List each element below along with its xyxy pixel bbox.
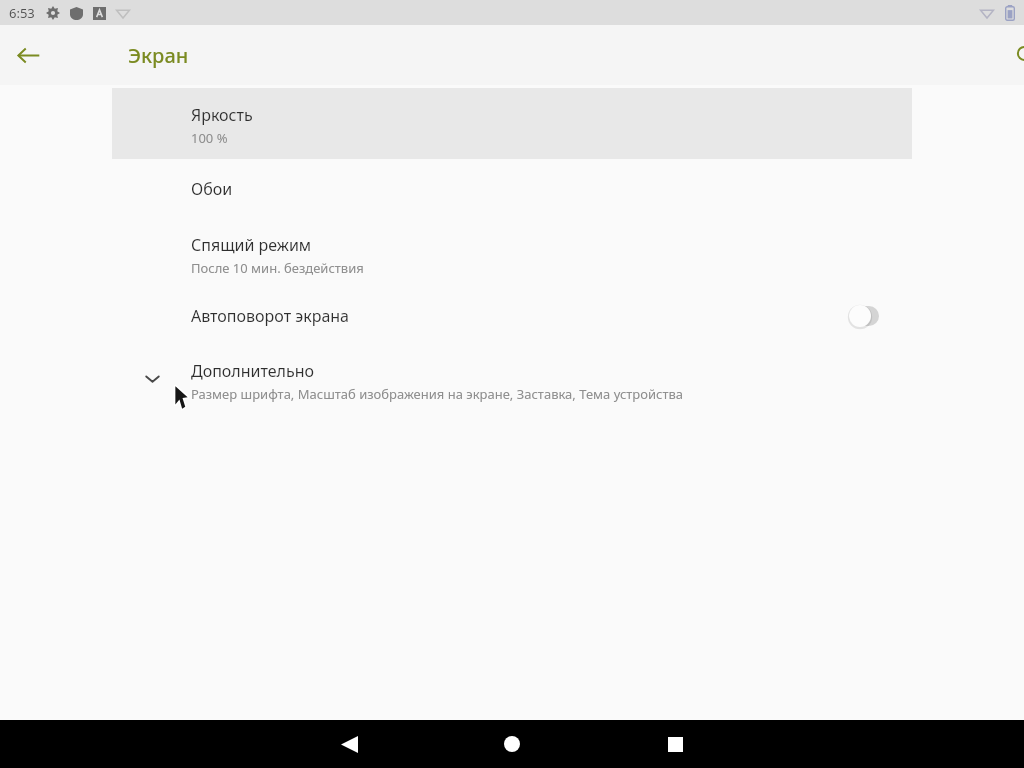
staticText: Обои <box>191 178 233 200</box>
button[interactable]: Назад <box>6 33 50 77</box>
staticText: После 10 мин. бездействия <box>191 259 364 277</box>
button[interactable]: Обои <box>112 165 912 213</box>
button[interactable]: Автоповорот экрана <box>112 292 912 340</box>
staticText: Автоповорот экрана <box>191 305 350 327</box>
button[interactable]: Развернуть <box>112 348 912 408</box>
button[interactable]: Назад <box>325 720 373 768</box>
other: Развернуть <box>138 364 166 392</box>
staticText: Яркость <box>191 104 253 126</box>
button[interactable]: Спящий режим <box>112 220 912 286</box>
staticText: 6:53 <box>9 4 35 22</box>
staticText: Дополнительно <box>191 360 315 382</box>
staticText: 100 % <box>191 129 228 147</box>
button[interactable]: Поиск <box>1004 33 1024 77</box>
button[interactable]: Главный экран <box>488 720 536 768</box>
button[interactable]: Обзор <box>651 720 699 768</box>
staticText: Спящий режим <box>191 234 312 256</box>
staticText: Экран <box>128 42 189 69</box>
button[interactable]: Яркость <box>112 88 912 159</box>
staticText: Размер шрифта, Масштаб изображения на эк… <box>191 385 684 403</box>
